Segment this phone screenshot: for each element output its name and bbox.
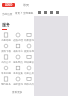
- staticText: 政策法规: [24, 50, 34, 53]
- button[interactable]: 意见征集: [12, 65, 23, 75]
- staticText: 服务: [2, 22, 10, 27]
- button[interactable]: 结果查询: [23, 32, 34, 42]
- staticText: 当前位置: [2, 12, 13, 15]
- staticText: 服务网点: [13, 61, 23, 64]
- button[interactable]: 服务网点: [12, 54, 23, 64]
- button[interactable]: 办事指南: [0, 32, 11, 42]
- button[interactable]: 首页: [23, 3, 29, 7]
- staticText: 常见问题: [1, 72, 11, 75]
- button[interactable]: 在线办理: [12, 32, 23, 42]
- staticText: 首页 > 全部服务: [15, 11, 34, 15]
- button[interactable]: 表格中心: [12, 43, 23, 53]
- staticText: 进度查询: [13, 83, 23, 86]
- staticText: 表格中心: [13, 50, 23, 53]
- button[interactable]: 进度查询: [12, 76, 23, 86]
- staticText: 预约服务: [1, 83, 11, 86]
- button[interactable]: 办件公示: [0, 54, 11, 64]
- button[interactable]: 我的办件: [23, 76, 34, 86]
- button[interactable]: 常见问题: [0, 65, 11, 75]
- staticText: 资料下载: [1, 50, 11, 53]
- button[interactable]: 政策法规: [23, 43, 34, 53]
- staticText: 我的办件: [24, 83, 34, 86]
- staticText: 办件公示: [1, 61, 11, 64]
- staticText: 投诉建议: [24, 61, 34, 64]
- staticText: 查看更多: [12, 90, 23, 93]
- staticText: 意见征集: [13, 72, 23, 75]
- staticText: LOGO: [5, 3, 13, 7]
- button[interactable]: 投诉建议: [23, 54, 34, 64]
- staticText: 信息公开: [24, 72, 34, 75]
- button[interactable]: LOGO: [2, 3, 15, 7]
- button[interactable]: 资料下载: [0, 43, 11, 53]
- staticText: 在线办理: [13, 39, 23, 42]
- staticText: 结果查询: [24, 39, 34, 42]
- button[interactable]: 预约服务: [0, 76, 11, 86]
- button[interactable]: 信息公开: [23, 65, 34, 75]
- staticText: 办事指南: [1, 39, 11, 42]
